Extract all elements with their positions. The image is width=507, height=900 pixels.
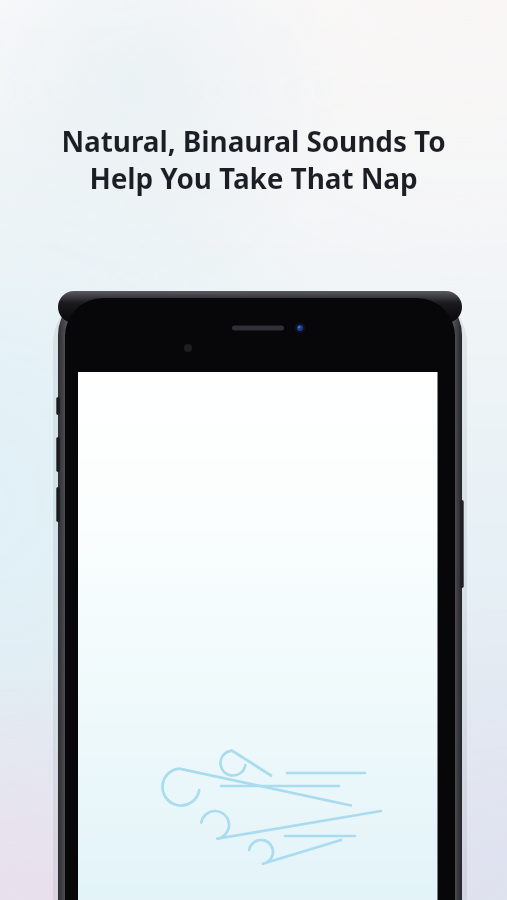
staticText: Natural, Binaural Sounds To Help You Tak… (10, 122, 497, 198)
